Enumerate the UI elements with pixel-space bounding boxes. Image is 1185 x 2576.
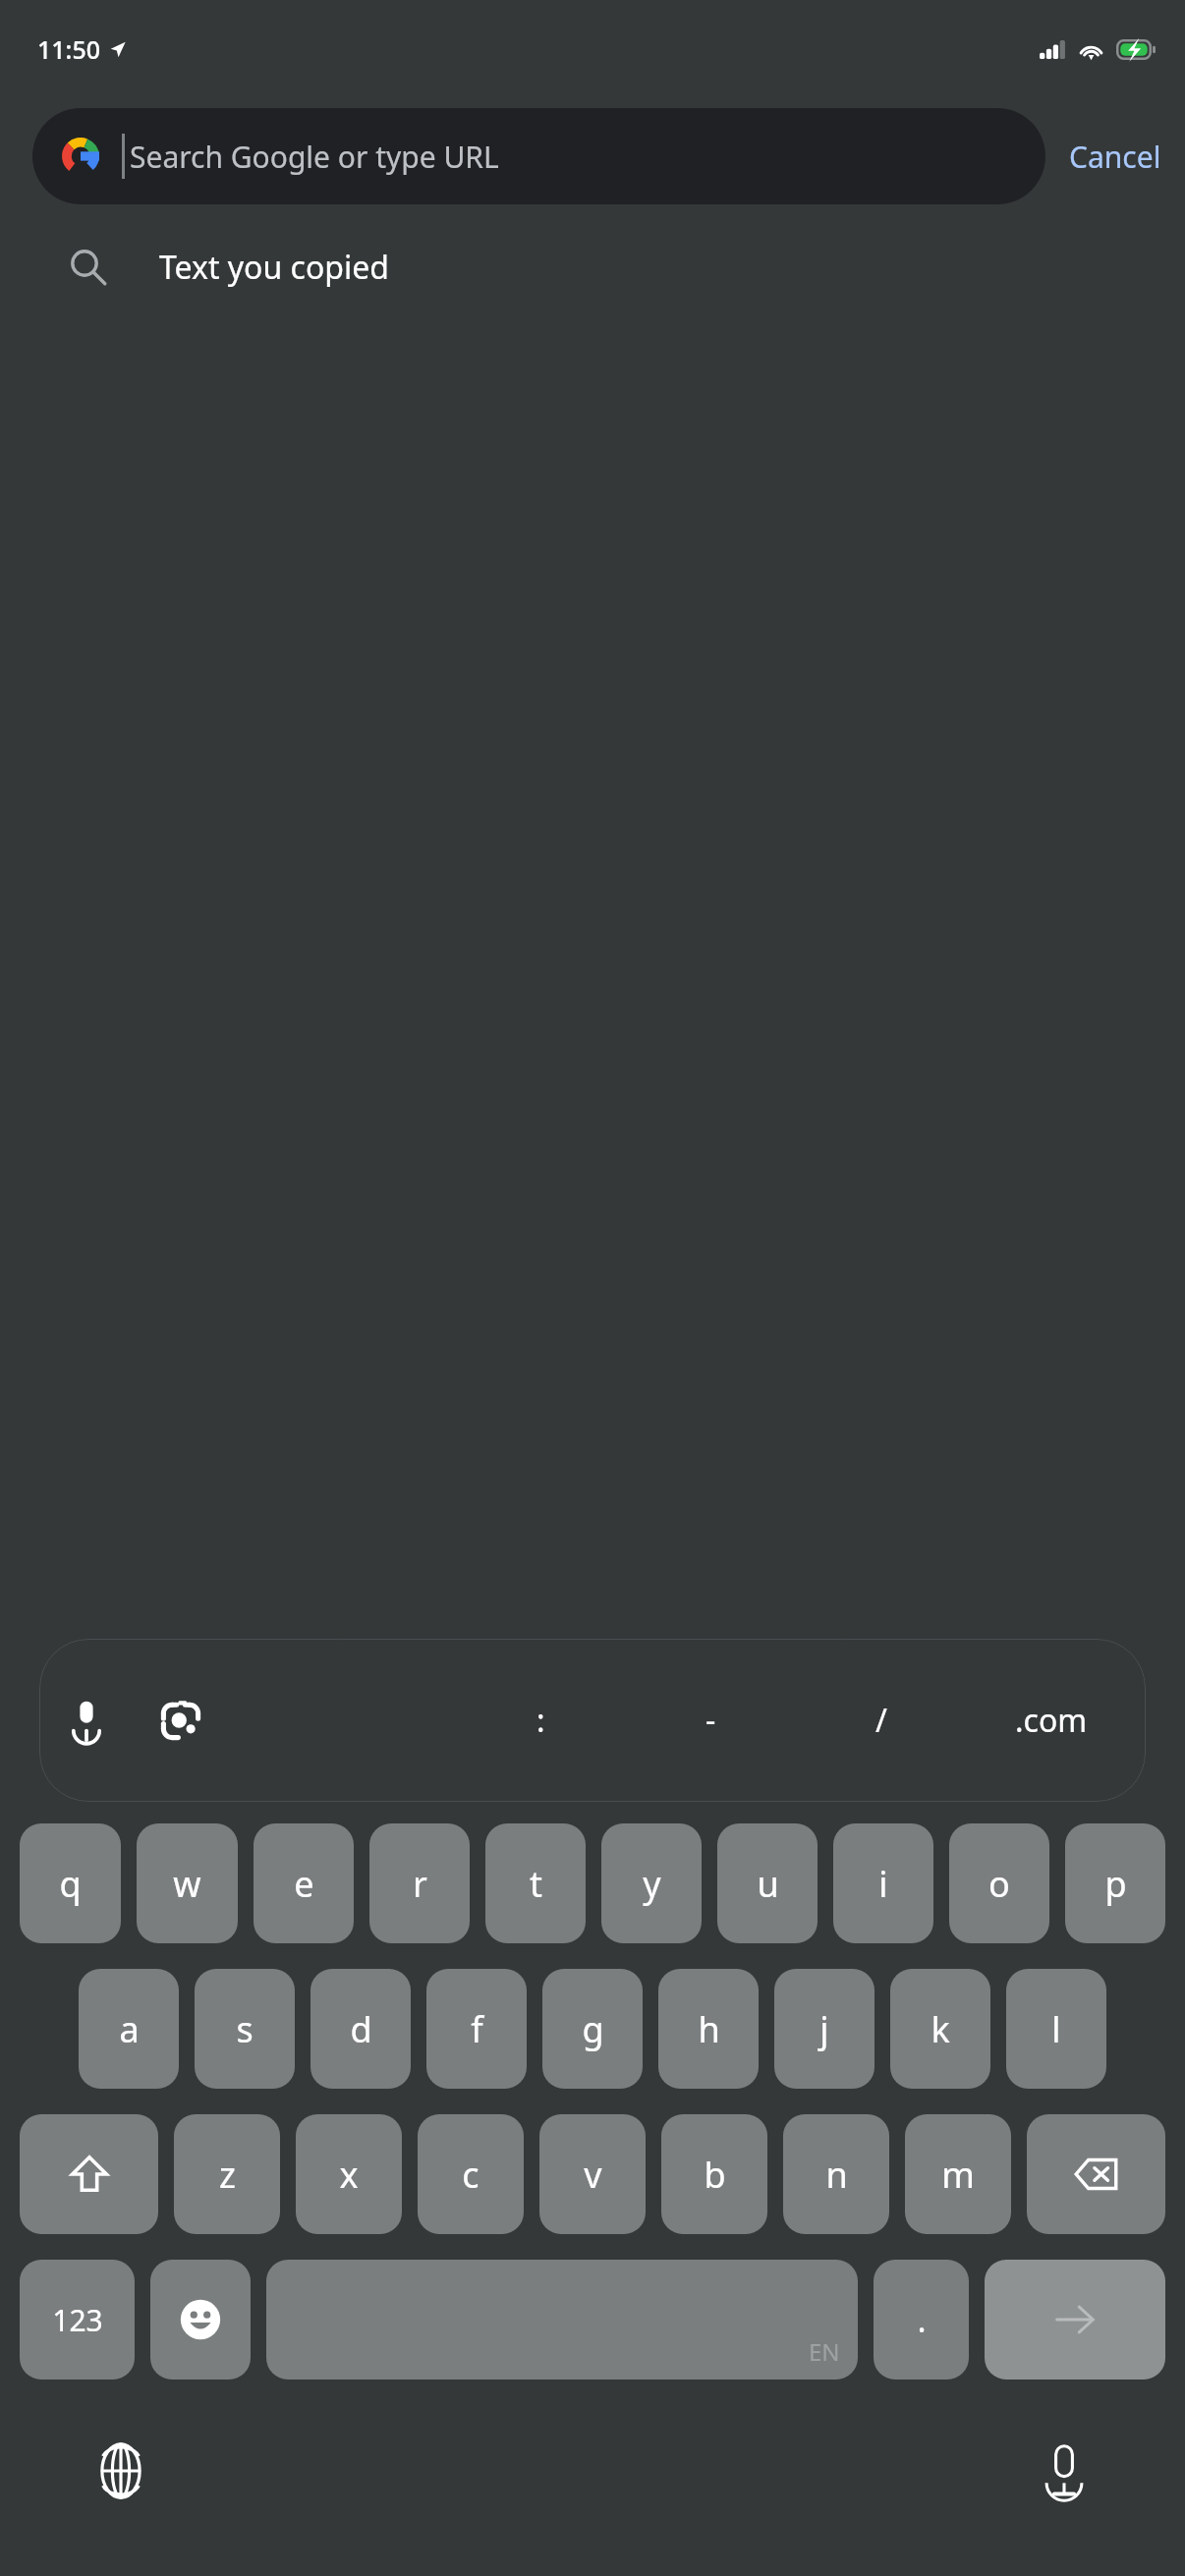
staticText: e — [294, 1860, 314, 1908]
button[interactable]: k — [890, 1969, 990, 2089]
button[interactable]: / — [796, 1639, 966, 1802]
staticText: s — [236, 2005, 254, 2053]
button[interactable]: i — [833, 1823, 933, 1943]
staticText: Text you copied — [159, 246, 389, 289]
staticText: i — [878, 1860, 888, 1908]
button[interactable]: Emoji — [150, 2260, 251, 2380]
button[interactable]: Cancel — [1045, 123, 1185, 191]
button[interactable]: x — [296, 2114, 402, 2234]
staticText: EN — [809, 2335, 840, 2368]
staticText: d — [350, 2005, 372, 2053]
staticText: t — [530, 1860, 542, 1908]
button[interactable]: Backspace — [1027, 2114, 1165, 2234]
staticText: z — [219, 2151, 236, 2199]
button[interactable]: m — [905, 2114, 1011, 2234]
button[interactable]: d — [310, 1969, 411, 2089]
button[interactable]: Voice input — [1028, 2435, 1100, 2507]
staticText: y — [643, 1860, 661, 1908]
button[interactable]: p — [1065, 1823, 1165, 1943]
staticText: q — [59, 1860, 82, 1908]
staticText: x — [339, 2151, 359, 2199]
button[interactable]: - — [626, 1639, 796, 1802]
button[interactable]: t — [485, 1823, 586, 1943]
staticText: 123 — [52, 2300, 103, 2340]
button[interactable]: y — [601, 1823, 702, 1943]
button[interactable]: Shift — [20, 2114, 158, 2234]
button[interactable]: u — [717, 1823, 818, 1943]
staticText: l — [1051, 2005, 1061, 2053]
button[interactable]: s — [195, 1969, 295, 2089]
staticText: r — [413, 1860, 427, 1908]
staticText: n — [825, 2151, 848, 2199]
button[interactable]: .com — [966, 1639, 1136, 1802]
staticText: w — [173, 1860, 201, 1908]
button[interactable]: . — [874, 2260, 969, 2380]
staticText: 11:50 — [37, 32, 101, 66]
button[interactable]: a — [79, 1969, 179, 2089]
staticText: f — [471, 2005, 483, 2053]
button[interactable]: q — [20, 1823, 121, 1943]
button[interactable]: c — [418, 2114, 524, 2234]
button[interactable]: : — [456, 1639, 626, 1802]
staticText: Cancel — [1069, 137, 1161, 177]
button[interactable]: f — [426, 1969, 527, 2089]
button[interactable]: z — [174, 2114, 280, 2234]
button[interactable]: v — [539, 2114, 646, 2234]
staticText: p — [1104, 1860, 1127, 1908]
button[interactable]: 123 — [20, 2260, 135, 2380]
staticText: g — [582, 2005, 604, 2053]
staticText: m — [941, 2151, 975, 2199]
button[interactable]: Google Lens — [134, 1673, 228, 1767]
staticText: Search Google or type URL — [130, 137, 499, 177]
button[interactable]: j — [774, 1969, 875, 2089]
button[interactable]: Text you copied — [0, 222, 1185, 312]
button[interactable]: w — [137, 1823, 238, 1943]
button[interactable]: g — [542, 1969, 643, 2089]
staticText: b — [704, 2151, 726, 2199]
staticText: - — [705, 1699, 716, 1742]
button[interactable]: o — [949, 1823, 1049, 1943]
button[interactable]: b — [661, 2114, 767, 2234]
button[interactable]: Change language — [85, 2435, 157, 2507]
button[interactable]: h — [658, 1969, 759, 2089]
staticText: c — [462, 2151, 480, 2199]
staticText: h — [698, 2005, 720, 2053]
staticText: v — [584, 2151, 602, 2199]
staticText: . — [917, 2297, 927, 2342]
button[interactable]: e — [254, 1823, 354, 1943]
button[interactable]: r — [369, 1823, 470, 1943]
button[interactable]: Search Google or type URL — [32, 108, 1045, 204]
button[interactable]: Space — [266, 2260, 858, 2380]
button[interactable]: l — [1006, 1969, 1106, 2089]
staticText: o — [988, 1860, 1010, 1908]
button[interactable]: n — [783, 2114, 889, 2234]
staticText: a — [119, 2005, 140, 2053]
button[interactable]: Enter — [985, 2260, 1165, 2380]
staticText: / — [875, 1699, 887, 1742]
staticText: k — [931, 2005, 950, 2053]
staticText: j — [819, 2005, 829, 2053]
staticText: .com — [1015, 1699, 1088, 1742]
staticText: u — [757, 1860, 779, 1908]
staticText: : — [536, 1699, 545, 1742]
button[interactable]: Voice search — [39, 1673, 134, 1767]
